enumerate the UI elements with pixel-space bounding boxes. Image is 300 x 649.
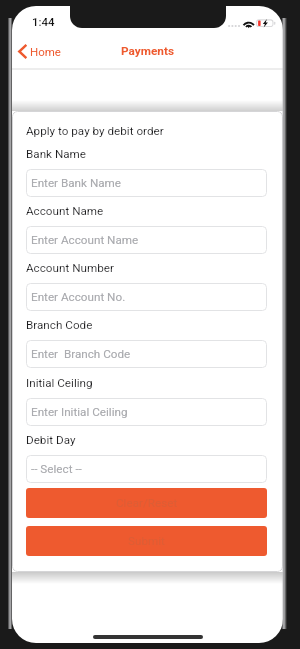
button[interactable]: Home — [15, 41, 69, 62]
staticText: Account Name — [26, 204, 104, 218]
staticText: Branch Code — [26, 318, 93, 332]
staticText: Enter Account Name — [31, 233, 139, 247]
staticText: Debit Day — [26, 433, 76, 447]
staticText: 1:44 — [32, 15, 55, 28]
button[interactable]: Enter Initial Ceiling — [26, 398, 267, 426]
staticText: Payments — [121, 44, 174, 58]
button[interactable]: -- Select -- — [26, 455, 267, 483]
staticText: -- Select -- — [31, 462, 82, 476]
staticText: Enter Initial Ceiling — [31, 405, 128, 419]
staticText: Enter Account No. — [31, 290, 126, 304]
button[interactable]: Enter Bank Name — [26, 169, 267, 197]
staticText: Account Number — [26, 261, 114, 275]
staticText: Initial Ceiling — [26, 376, 93, 390]
button[interactable]: Submit — [26, 526, 267, 556]
button[interactable]: Enter Account No. — [26, 283, 267, 311]
staticText: Enter Branch Code — [31, 347, 131, 361]
staticText: Clear/Reset — [116, 496, 178, 510]
button[interactable]: Enter Branch Code — [26, 340, 267, 368]
button[interactable]: Clear/Reset — [26, 488, 267, 518]
button[interactable]: Enter Account Name — [26, 226, 267, 254]
staticText: Submit — [128, 534, 165, 548]
staticText: Apply to pay by debit order — [26, 124, 164, 138]
staticText: Bank Name — [26, 147, 87, 161]
staticText: Home — [30, 45, 61, 58]
staticText: Enter Bank Name — [31, 176, 122, 190]
